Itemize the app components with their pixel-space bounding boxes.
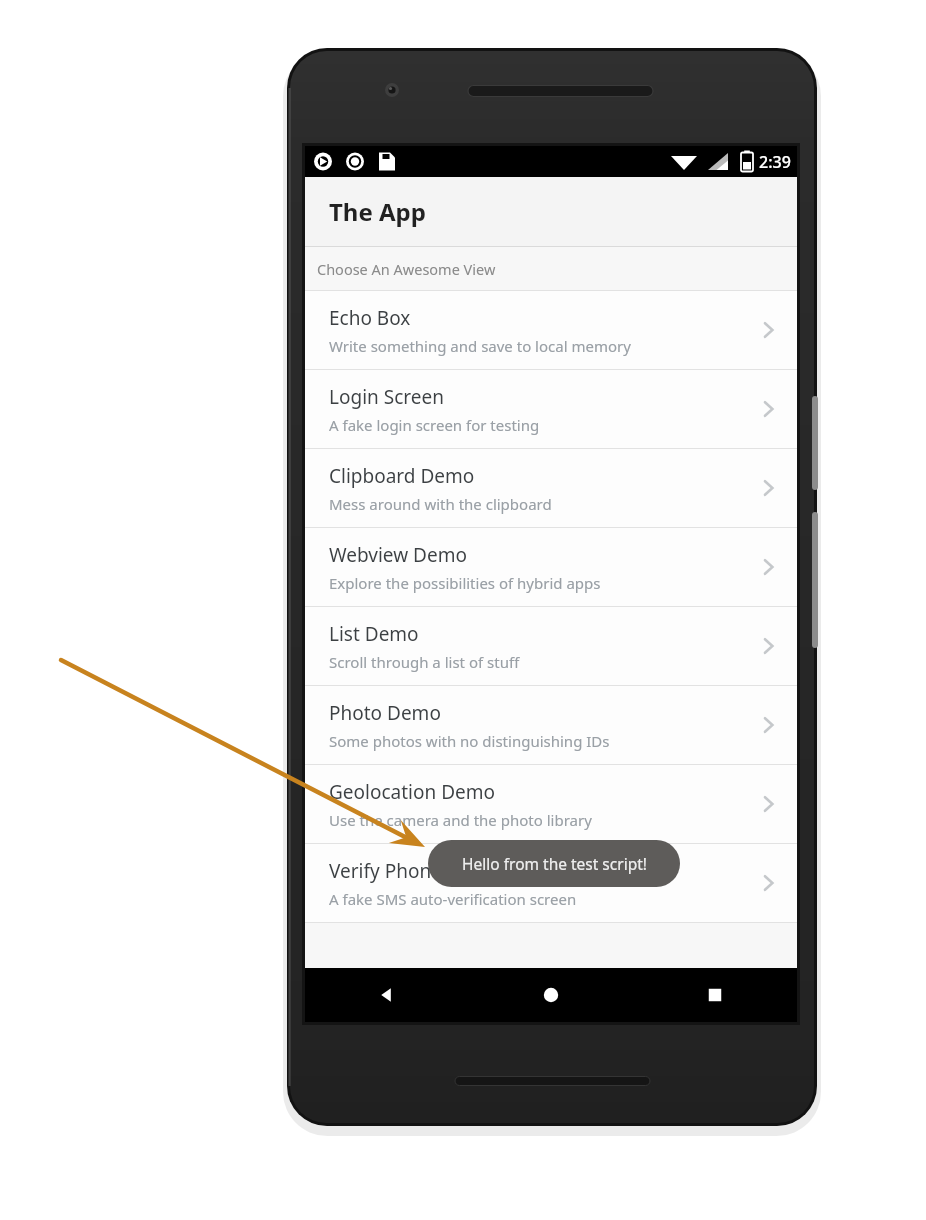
staticText: A fake SMS auto-verification screen <box>329 889 577 909</box>
staticText: Some photos with no distinguishing IDs <box>329 731 610 751</box>
button[interactable]: Recent apps <box>633 968 797 1022</box>
button[interactable]: Echo Box <box>305 291 797 369</box>
staticText: Explore the possibilities of hybrid apps <box>329 573 601 593</box>
button[interactable]: Verify Phone Number <box>305 844 797 922</box>
staticText: Use the camera and the photo library <box>329 810 592 830</box>
button[interactable]: List Demo <box>305 607 797 685</box>
button[interactable]: Login Screen <box>305 370 797 448</box>
staticText: A fake login screen for testing <box>329 415 540 435</box>
staticText: Webview Demo <box>329 542 467 568</box>
button[interactable]: Photo Demo <box>305 686 797 764</box>
staticText: Clipboard Demo <box>329 463 475 489</box>
staticText: Write something and save to local memory <box>329 336 631 356</box>
button[interactable]: Geolocation Demo <box>305 765 797 843</box>
staticText: Echo Box <box>329 305 411 331</box>
staticText: Verify Phone Number <box>329 858 521 884</box>
button[interactable]: Webview Demo <box>305 528 797 606</box>
staticText: Geolocation Demo <box>329 779 496 805</box>
staticText: Scroll through a list of stuff <box>329 652 520 672</box>
staticText: Hello from the test script! <box>462 853 647 874</box>
staticText: Choose An Awesome View <box>317 259 496 279</box>
staticText: Mess around with the clipboard <box>329 494 552 514</box>
staticText: Login Screen <box>329 384 444 410</box>
staticText: List Demo <box>329 621 419 647</box>
staticText: 2:39 <box>759 151 791 173</box>
staticText: Photo Demo <box>329 700 441 726</box>
button[interactable]: Clipboard Demo <box>305 449 797 527</box>
staticText: The App <box>329 195 426 228</box>
button[interactable]: Back <box>305 968 469 1022</box>
button[interactable]: Home <box>469 968 633 1022</box>
